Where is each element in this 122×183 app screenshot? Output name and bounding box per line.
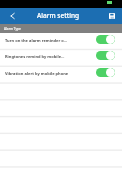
staticText: Alarm setting <box>37 11 80 20</box>
button[interactable]: Vibration alert by mobile phone <box>0 66 122 82</box>
button[interactable]: Save <box>106 8 122 24</box>
button[interactable]: Ringtones remind by mobile... <box>0 49 122 65</box>
staticText: Turn on the alarm reminder o... <box>5 38 96 43</box>
staticText: Alarm Type <box>4 27 21 31</box>
button[interactable]: Toggle <box>96 68 115 77</box>
button[interactable]: Toggle <box>96 51 115 60</box>
button[interactable]: Turn on the alarm reminder o... <box>0 33 122 49</box>
button[interactable]: Back <box>0 8 24 24</box>
staticText: Vibration alert by mobile phone <box>5 71 96 76</box>
button[interactable]: Toggle <box>96 35 115 44</box>
staticText: Ringtones remind by mobile... <box>5 54 96 59</box>
